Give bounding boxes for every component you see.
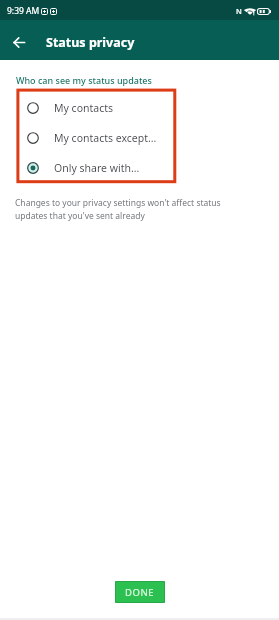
button[interactable]: My contacts except… [0, 123, 279, 153]
staticText: DONE [125, 586, 155, 599]
staticText: Who can see my status updates [16, 74, 152, 86]
staticText: My contacts except… [54, 131, 157, 145]
staticText: Only share with… [54, 161, 140, 175]
staticText: N [236, 6, 242, 16]
staticText: Changes to your privacy settings won't a… [15, 197, 221, 222]
button[interactable]: My contacts [0, 93, 279, 123]
button[interactable]: DONE [115, 581, 165, 603]
staticText: Status privacy [46, 34, 135, 51]
staticText: 9:39 AM [7, 5, 40, 17]
button[interactable]: Back [2, 25, 36, 59]
staticText: My contacts [54, 101, 114, 115]
button[interactable]: Only share with… [0, 153, 279, 183]
